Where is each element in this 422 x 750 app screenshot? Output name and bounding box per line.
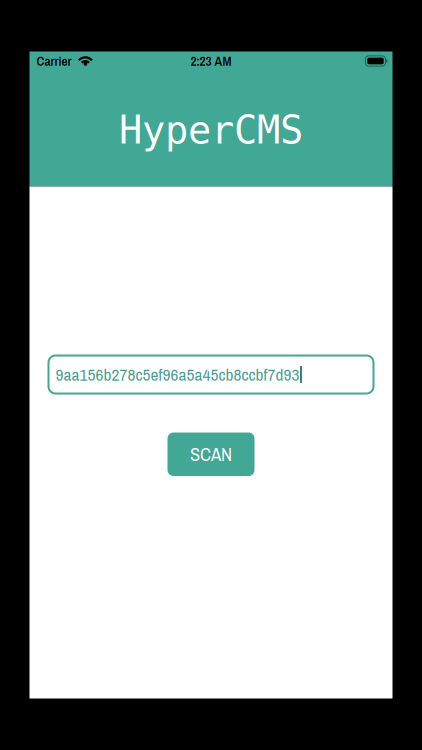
staticText: Carrier [36, 52, 71, 70]
staticText: 9aa156b278c5ef96a5a45cb8ccbf7d93 [55, 363, 299, 386]
staticText: HyperCMS [119, 107, 303, 152]
staticText: SCAN [190, 442, 232, 467]
button[interactable]: SCAN [167, 432, 254, 476]
staticText: 2:23 AM [190, 52, 231, 70]
